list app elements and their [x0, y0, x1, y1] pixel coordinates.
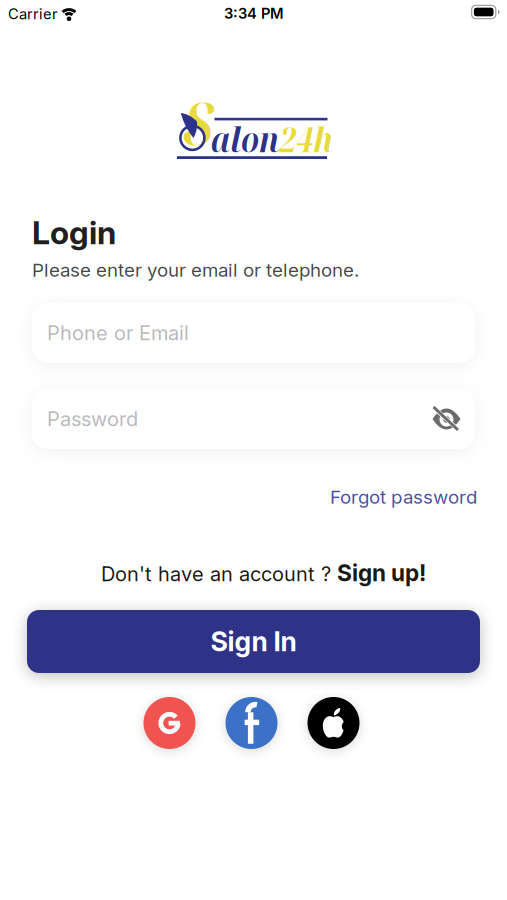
staticText: Sign In [210, 626, 296, 657]
staticText: Don't have an account ? Sign up! [101, 560, 426, 586]
button[interactable]: Sign in with Facebook [225, 697, 277, 749]
button[interactable]: Sign in with Apple [307, 697, 359, 749]
button[interactable]: Don't have an account ? Sign up! [101, 560, 426, 586]
staticText: Password [47, 407, 138, 431]
staticText: Forgot password [330, 486, 477, 508]
staticText: 24h [279, 116, 333, 162]
staticText: Login [32, 214, 116, 251]
staticText: Please enter your email or telephone. [32, 259, 359, 281]
staticText: alon [211, 116, 279, 162]
button[interactable]: Sign In [27, 610, 480, 673]
button[interactable]: Show password [432, 407, 461, 431]
staticText: Carrier [8, 5, 58, 23]
staticText: Phone or Email [47, 321, 189, 345]
button[interactable]: Sign in with Google [143, 697, 195, 749]
button[interactable]: Forgot password [330, 486, 477, 508]
staticText: 3:34 PM [224, 5, 284, 22]
staticText: S [183, 82, 213, 162]
